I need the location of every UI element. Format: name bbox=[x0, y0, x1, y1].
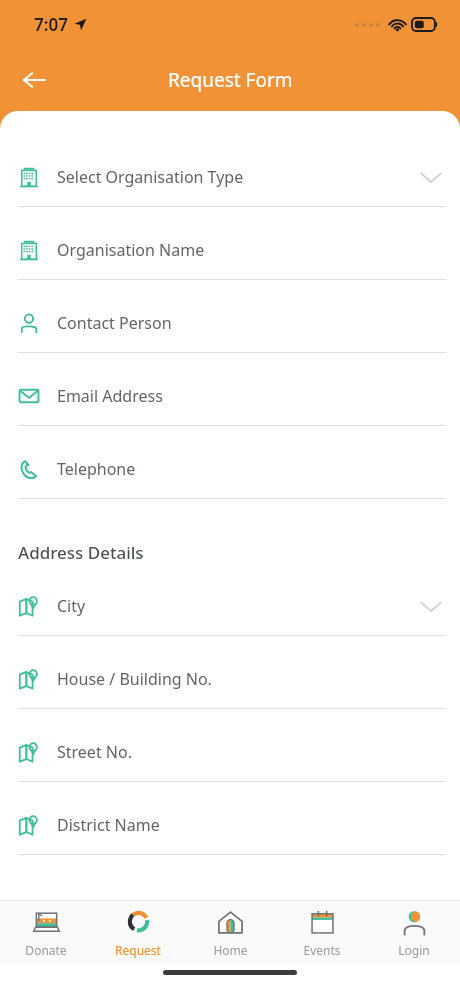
button[interactable]: City bbox=[0, 587, 460, 660]
staticText: Street No. bbox=[57, 741, 442, 763]
button[interactable]: Street No. bbox=[0, 733, 460, 806]
button[interactable]: Back bbox=[10, 56, 58, 104]
staticText: 7:07 bbox=[34, 13, 68, 36]
staticText: Contact Person bbox=[57, 312, 442, 334]
button[interactable]: Contact Person bbox=[0, 304, 460, 377]
staticText: Select Organisation Type bbox=[57, 166, 420, 188]
staticText: Request Form bbox=[168, 67, 293, 93]
staticText: District Name bbox=[57, 814, 442, 836]
staticText: City bbox=[57, 595, 420, 617]
staticText: Login bbox=[398, 942, 430, 958]
button[interactable]: Home bbox=[184, 901, 276, 964]
staticText: Donate bbox=[25, 942, 67, 958]
button[interactable]: Select Organisation Type bbox=[0, 158, 460, 231]
staticText: House / Building No. bbox=[57, 668, 442, 690]
staticText: Events bbox=[303, 942, 341, 958]
staticText: Request bbox=[115, 942, 161, 958]
button[interactable]: House / Building No. bbox=[0, 660, 460, 733]
button[interactable]: Email Address bbox=[0, 377, 460, 450]
staticText: Organisation Name bbox=[57, 239, 442, 261]
staticText: Address Details bbox=[18, 541, 144, 564]
staticText: Home bbox=[213, 942, 248, 958]
button[interactable]: Request bbox=[92, 901, 184, 964]
button[interactable]: District Name bbox=[0, 806, 460, 879]
button[interactable]: Donate bbox=[0, 901, 92, 964]
button[interactable]: Telephone bbox=[0, 450, 460, 523]
button[interactable]: Login bbox=[368, 901, 460, 964]
staticText: Telephone bbox=[57, 458, 442, 480]
staticText: Email Address bbox=[57, 385, 442, 407]
button[interactable]: Events bbox=[276, 901, 368, 964]
button[interactable]: Organisation Name bbox=[0, 231, 460, 304]
